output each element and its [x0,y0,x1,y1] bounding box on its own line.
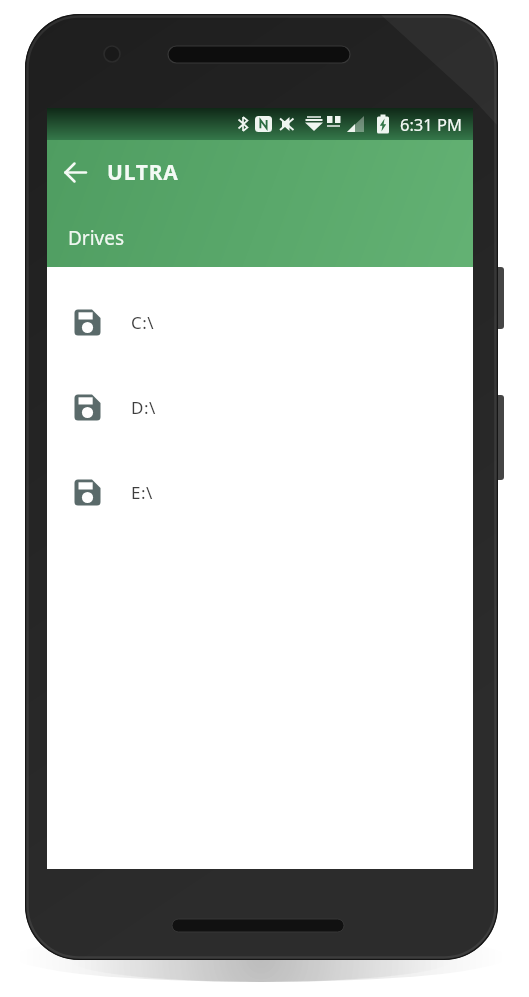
staticText: E:\ [131,481,153,504]
staticText: 6:31 PM [400,113,462,135]
staticText: D:\ [131,396,156,419]
button[interactable]: E:\ [47,450,473,535]
button[interactable]: C:\ [47,280,473,365]
staticText: Drives [68,225,125,251]
button[interactable] [47,152,103,192]
staticText: ULTRA [107,158,179,187]
staticText: C:\ [131,311,155,334]
button[interactable]: D:\ [47,365,473,450]
